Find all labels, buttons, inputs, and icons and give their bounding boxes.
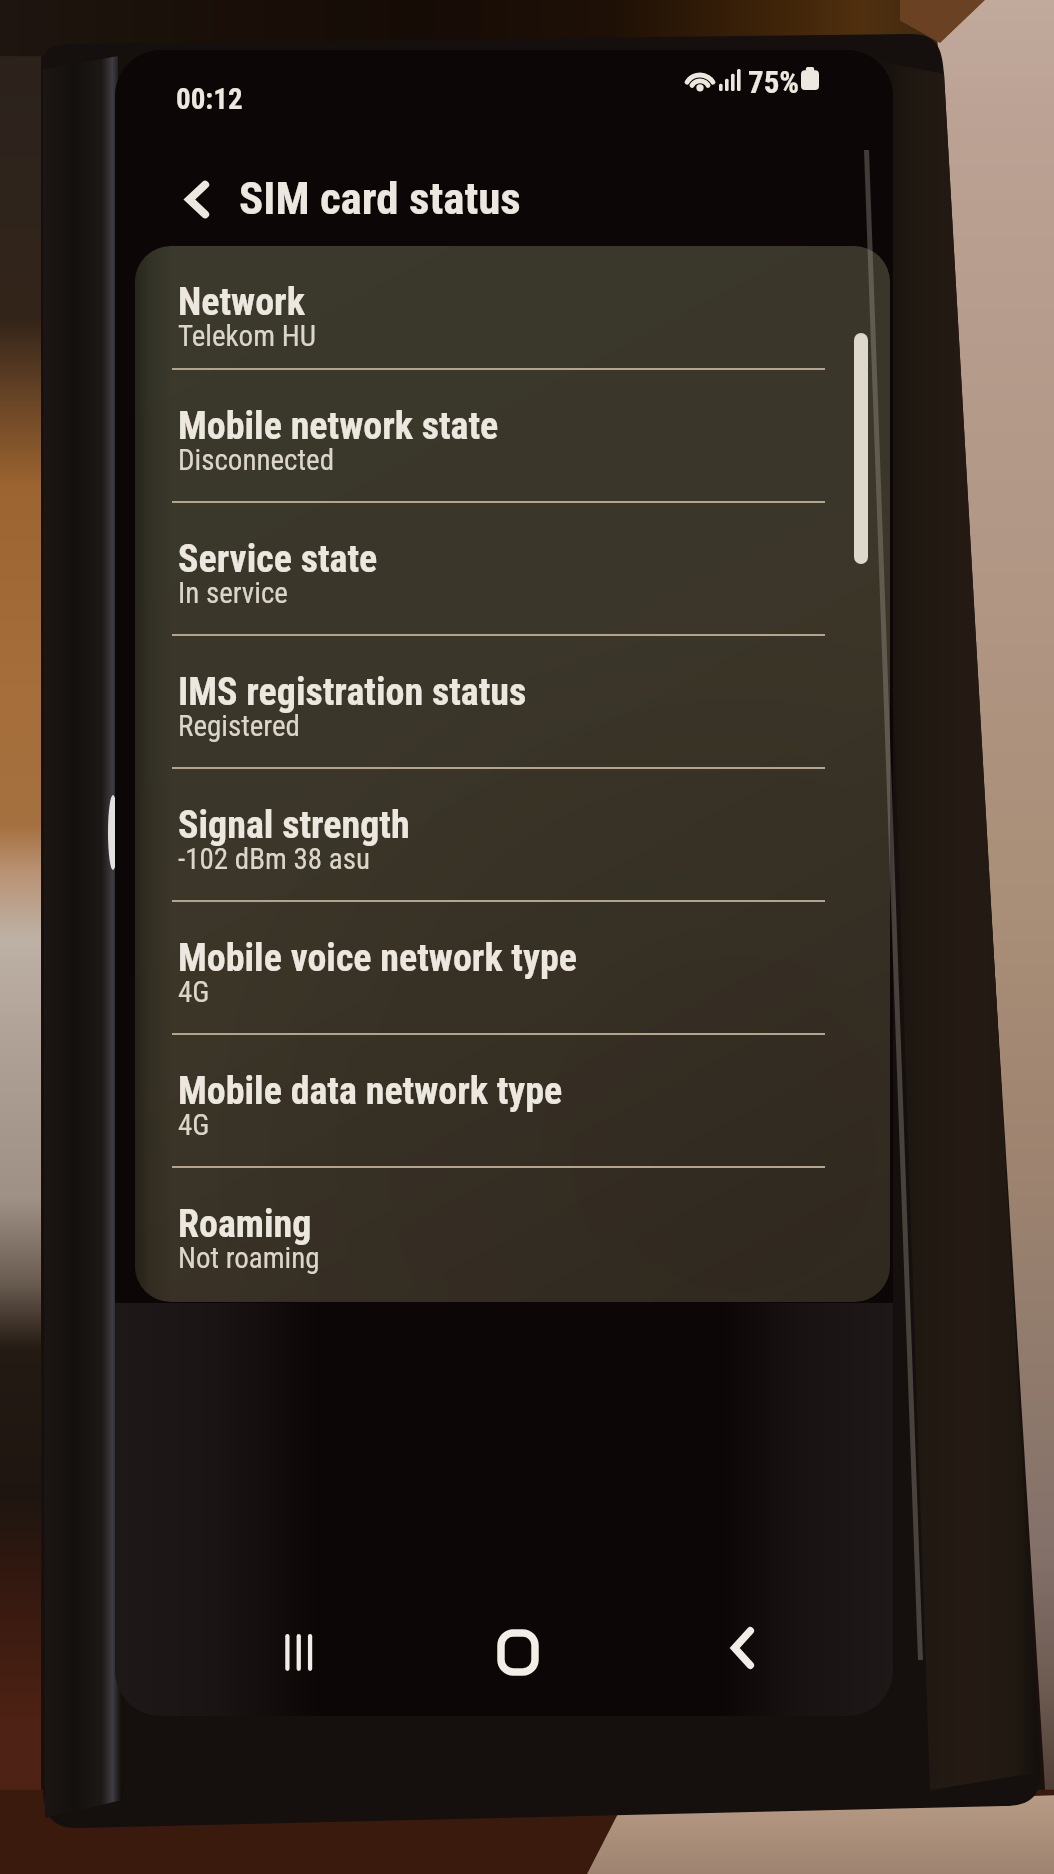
staticText: 4G: [178, 975, 210, 1009]
button[interactable]: Network: [135, 246, 890, 370]
staticText: Service state: [178, 537, 378, 582]
staticText: Signal strength: [178, 803, 410, 848]
button[interactable]: Roaming: [135, 1168, 890, 1302]
button[interactable]: IMS registration status: [135, 636, 890, 769]
staticText: Not roaming: [178, 1241, 320, 1275]
button[interactable]: Back: [163, 163, 231, 235]
button[interactable]: Mobile voice network type: [135, 902, 890, 1035]
staticText: Registered: [178, 709, 300, 743]
staticText: 4G: [178, 1108, 210, 1142]
button[interactable]: Back: [687, 1593, 797, 1703]
staticText: In service: [178, 576, 288, 610]
staticText: Mobile data network type: [178, 1069, 563, 1114]
button[interactable]: Mobile network state: [135, 370, 890, 503]
staticText: Mobile network state: [178, 404, 499, 449]
button[interactable]: Recents: [246, 1597, 356, 1707]
staticText: SIM card status: [239, 172, 521, 225]
staticText: Mobile voice network type: [178, 936, 577, 981]
staticText: -102 dBm 38 asu: [178, 842, 370, 876]
staticText: Telekom HU: [178, 319, 316, 353]
staticText: 00:12: [176, 82, 243, 116]
staticText: 75%: [748, 64, 800, 100]
staticText: Roaming: [178, 1202, 312, 1247]
button[interactable]: Service state: [135, 503, 890, 636]
staticText: IMS registration status: [178, 670, 527, 715]
button[interactable]: Home: [463, 1597, 573, 1707]
button[interactable]: Signal strength: [135, 769, 890, 902]
staticText: Network: [178, 280, 305, 325]
button[interactable]: Mobile data network type: [135, 1035, 890, 1168]
staticText: Disconnected: [178, 443, 335, 477]
